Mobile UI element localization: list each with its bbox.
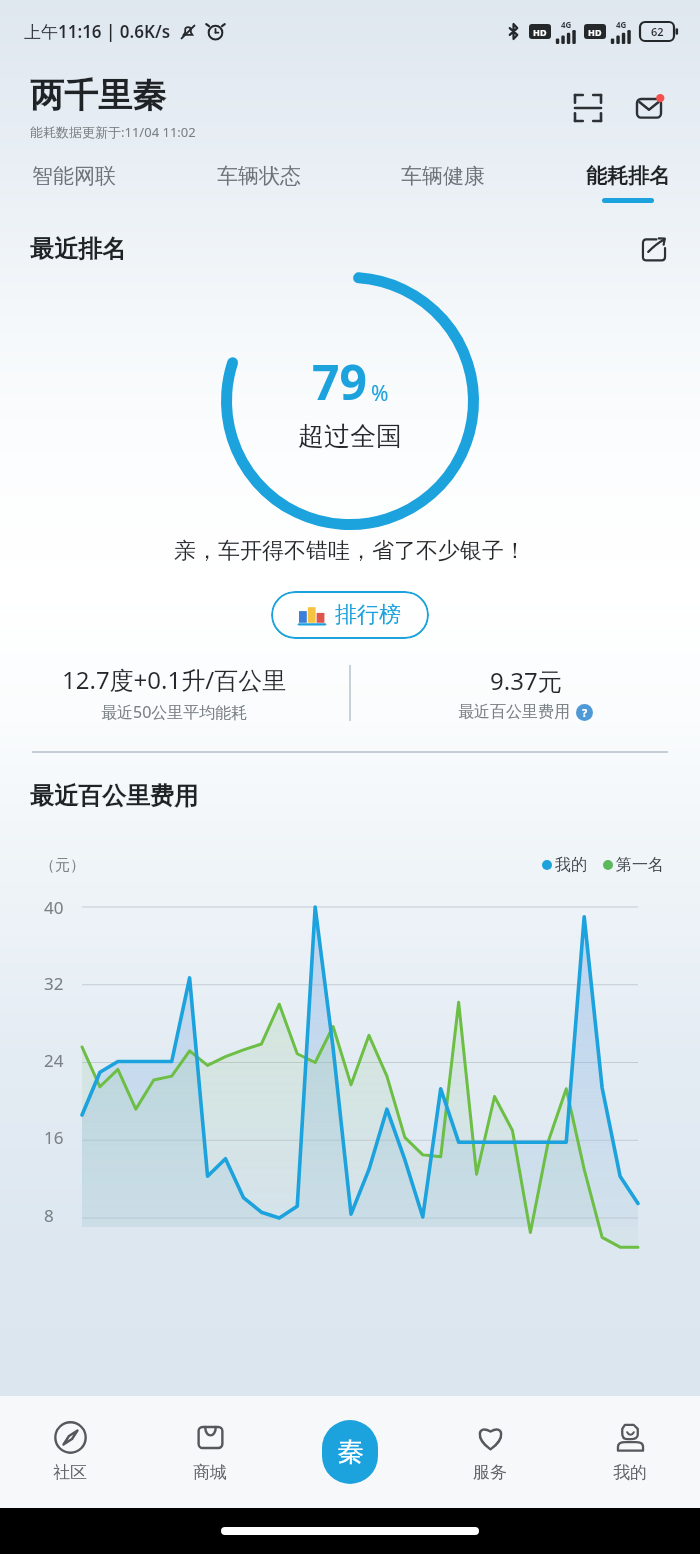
button[interactable]: 智能网联 — [30, 163, 118, 203]
button[interactable]: 车辆状态 — [215, 163, 303, 203]
staticText: 我的 — [613, 1462, 647, 1483]
staticText: 超过全国 — [298, 420, 402, 453]
staticText: 12.7度+0.1升/百公里 — [62, 663, 287, 696]
button[interactable]: 排行榜 — [271, 591, 429, 639]
staticText: 排行榜 — [335, 601, 401, 629]
staticText: 16 — [44, 1126, 64, 1149]
button[interactable]: 我的 — [560, 1415, 700, 1489]
staticText: 最近50公里平均能耗 — [101, 701, 248, 723]
staticText: 79 — [312, 349, 367, 414]
staticText: 商城 — [193, 1462, 227, 1483]
staticText: 服务 — [473, 1462, 507, 1483]
staticText: 车辆健康 — [401, 163, 485, 189]
staticText: 62 — [651, 24, 664, 39]
button[interactable]: 消息 — [630, 86, 674, 130]
staticText: 上午11:16 | 0.6K/s — [24, 20, 171, 43]
staticText: 秦 — [337, 1435, 364, 1469]
staticText: 社区 — [53, 1462, 87, 1483]
staticText: 40 — [44, 896, 64, 919]
button[interactable]: 分享 — [636, 231, 672, 267]
staticText: HD — [588, 26, 602, 38]
staticText: ? — [582, 705, 588, 720]
staticText: 8 — [44, 1204, 54, 1227]
button[interactable]: 车辆健康 — [399, 163, 487, 203]
staticText: 能耗排名 — [586, 163, 670, 189]
button[interactable]: 商城 — [140, 1415, 280, 1489]
staticText: 第一名 — [616, 855, 664, 875]
staticText: 最近百公里费用 — [458, 702, 570, 722]
staticText: 车辆状态 — [217, 163, 301, 189]
button[interactable]: 能耗排名 — [584, 163, 672, 203]
button[interactable]: 秦 — [322, 1420, 378, 1484]
staticText: 32 — [44, 972, 64, 995]
button[interactable]: 扫一扫 — [566, 86, 610, 130]
staticText: 亲，车开得不错哇，省了不少银子！ — [174, 537, 526, 565]
button[interactable]: 服务 — [420, 1415, 560, 1489]
staticText: % — [371, 379, 389, 408]
staticText: 4G — [616, 19, 627, 30]
staticText: 智能网联 — [32, 163, 116, 189]
staticText: 我的 — [555, 855, 587, 875]
button[interactable]: 说明 — [576, 704, 593, 721]
staticText: 24 — [44, 1049, 64, 1072]
staticText: （元） — [40, 856, 85, 875]
staticText: 最近排名 — [30, 234, 126, 264]
staticText: 两千里秦 — [30, 74, 166, 117]
staticText: 能耗数据更新于:11/04 11:02 — [30, 123, 196, 141]
staticText: 最近百公里费用 — [30, 781, 198, 811]
button[interactable]: 社区 — [0, 1415, 140, 1489]
staticText: 9.37元 — [490, 664, 562, 697]
staticText: HD — [533, 26, 547, 38]
staticText: 4G — [561, 19, 572, 30]
